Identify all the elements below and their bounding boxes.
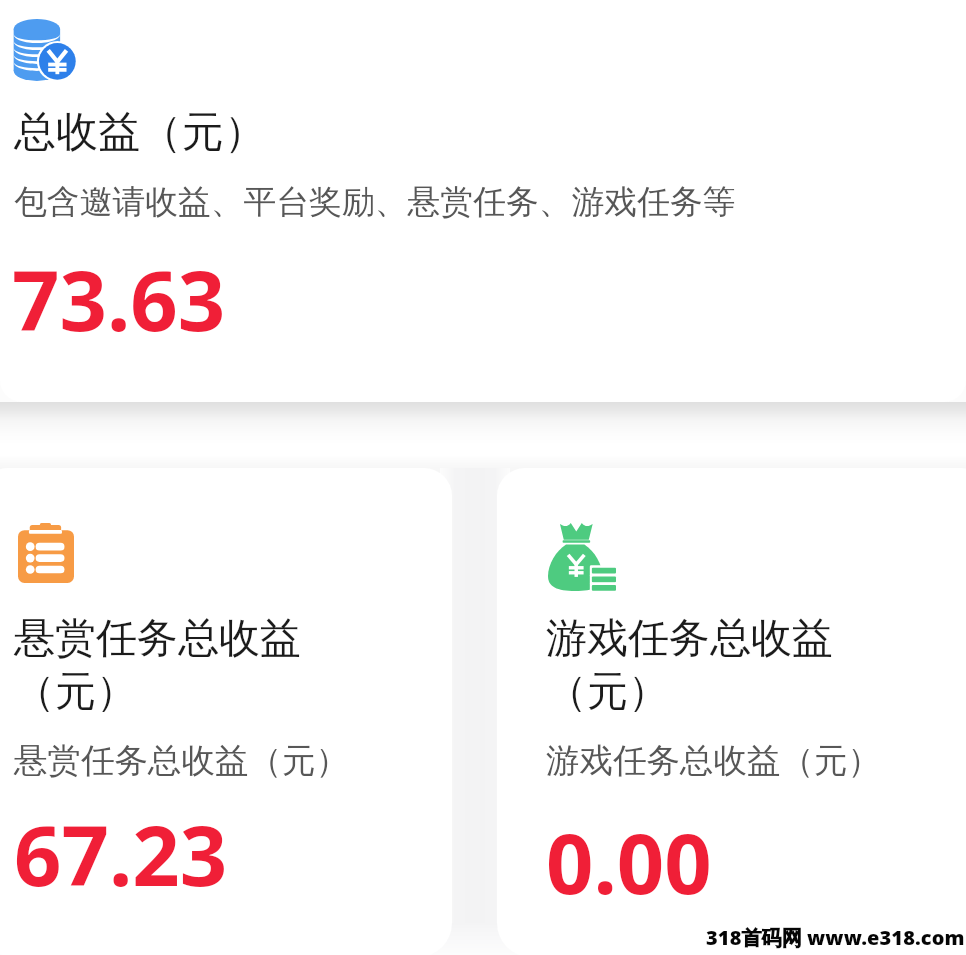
button[interactable]: Game earnings: [497, 468, 966, 955]
other: Game earnings: [548, 523, 616, 591]
other: Total earnings: [13, 17, 79, 83]
staticText: 0.00: [546, 805, 712, 918]
staticText: 67.23: [14, 797, 228, 910]
button[interactable]: Task earnings: [0, 468, 452, 955]
other: Task earnings: [18, 523, 74, 583]
staticText: 73.63: [12, 242, 226, 355]
staticText: 包含邀请收益、平台奖励、悬赏任务、游戏任务等: [14, 181, 736, 222]
staticText: 游戏任务总收益（元）: [546, 740, 881, 782]
staticText: 悬赏任务总收益（元）: [14, 613, 314, 717]
staticText: 悬赏任务总收益（元）: [14, 740, 349, 782]
staticText: 总收益（元）: [14, 106, 266, 159]
staticText: 318首码网 www.e318.com: [706, 924, 965, 951]
staticText: 游戏任务总收益（元）: [546, 613, 846, 717]
